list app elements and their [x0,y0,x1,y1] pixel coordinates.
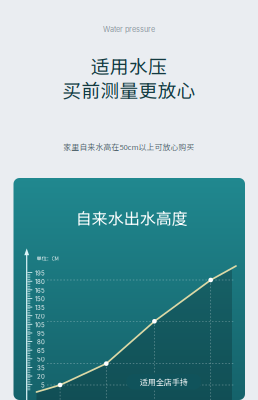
staticText: 95 [37,330,45,337]
staticText: 195 [35,270,45,277]
staticText: 150 [35,295,45,303]
staticText: 单位：CM [37,254,59,262]
staticText: 80 [37,339,45,346]
staticText: 35 [37,364,45,372]
staticText: 适用水压 [91,52,167,79]
staticText: 家里自来水高在50cm以上可放心购买 [63,141,194,152]
staticText: 135 [35,304,45,311]
staticText: 65 [37,347,45,354]
staticText: 5 [41,382,45,389]
staticText: 105 [35,321,45,329]
staticText: 买前测量更放心 [62,76,195,103]
staticText: 165 [35,287,45,294]
staticText: 180 [35,278,45,285]
staticText: Water pressure [103,25,155,34]
staticText: 自来水出水高度 [76,206,188,229]
staticText: 适用全店手持 [140,376,188,388]
staticText: 120 [35,313,45,320]
staticText: 20 [37,373,45,380]
staticText: 50 [37,356,45,363]
button[interactable]: 适用全店手持 [126,374,201,389]
